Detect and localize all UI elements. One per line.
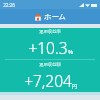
staticText: ホーム (44, 12, 66, 21)
staticText: 運用収益率 (39, 29, 61, 35)
button[interactable]: 運用収益率 (0, 28, 100, 92)
staticText: 運用収益額 (39, 62, 61, 68)
staticText: 円 (72, 83, 77, 89)
other: Home (34, 13, 42, 21)
staticText: +10.3 (28, 37, 68, 58)
staticText: 22:26 (3, 2, 15, 8)
staticText: +7,204 (24, 70, 72, 91)
staticText: % (68, 48, 73, 56)
button[interactable]: Home (30, 10, 70, 23)
